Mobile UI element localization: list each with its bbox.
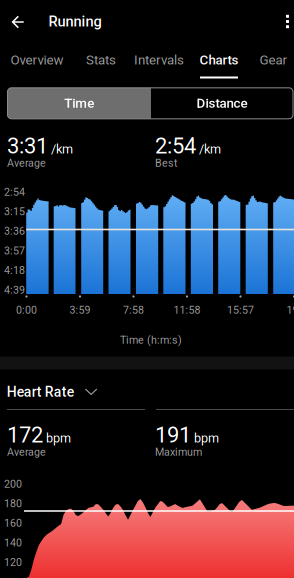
staticText: 3:59 <box>69 304 90 316</box>
staticText: 172 <box>7 422 43 448</box>
staticText: /km <box>199 142 221 157</box>
staticText: Time (h:m:s) <box>120 334 182 346</box>
staticText: Intervals <box>134 52 184 68</box>
staticText: Gear <box>259 52 287 68</box>
staticText: 191 <box>155 422 191 448</box>
button[interactable]: Stats <box>77 43 125 78</box>
staticText: Maximum <box>155 446 202 458</box>
staticText: bpm <box>194 431 219 446</box>
staticText: bpm <box>46 431 71 446</box>
button[interactable]: Time <box>7 88 151 119</box>
staticText: 7:58 <box>123 304 144 316</box>
button[interactable]: Charts <box>190 43 247 78</box>
staticText: Overview <box>10 52 63 68</box>
staticText: 3:57 <box>4 244 25 257</box>
staticText: /km <box>51 142 73 157</box>
staticText: Running <box>48 13 101 30</box>
staticText: 4:18 <box>4 264 25 277</box>
staticText: 4:39 <box>4 284 25 296</box>
staticText: 160 <box>4 517 22 529</box>
staticText: 15:57 <box>227 304 254 316</box>
button[interactable]: Running <box>48 4 101 38</box>
staticText: 200 <box>4 478 22 490</box>
staticText: Charts <box>199 52 238 68</box>
button[interactable]: Gear <box>250 43 294 78</box>
button[interactable]: Overview <box>1 43 73 78</box>
button[interactable]: Intervals <box>125 43 193 78</box>
button[interactable]: Heart Rate <box>7 379 97 405</box>
button[interactable]: More options <box>274 4 294 38</box>
staticText: Average <box>7 157 46 169</box>
button[interactable]: Back <box>0 3 36 41</box>
staticText: Average <box>7 446 46 458</box>
staticText: 3:36 <box>4 225 25 237</box>
staticText: 180 <box>4 497 22 510</box>
staticText: 3:31 <box>7 133 48 159</box>
staticText: 2:54 <box>155 133 196 159</box>
staticText: Time <box>64 95 94 111</box>
staticText: 120 <box>4 556 22 569</box>
staticText: 3:15 <box>4 205 25 218</box>
staticText: 140 <box>4 536 22 549</box>
staticText: Best <box>155 157 177 169</box>
staticText: 2:54 <box>4 186 25 198</box>
staticText: Distance <box>196 95 247 111</box>
staticText: Heart Rate <box>7 384 74 400</box>
staticText: 0:00 <box>16 304 37 316</box>
staticText: 11:58 <box>173 304 200 316</box>
staticText: 19: <box>286 304 294 316</box>
staticText: Stats <box>86 52 116 68</box>
button[interactable]: Distance <box>151 88 293 119</box>
